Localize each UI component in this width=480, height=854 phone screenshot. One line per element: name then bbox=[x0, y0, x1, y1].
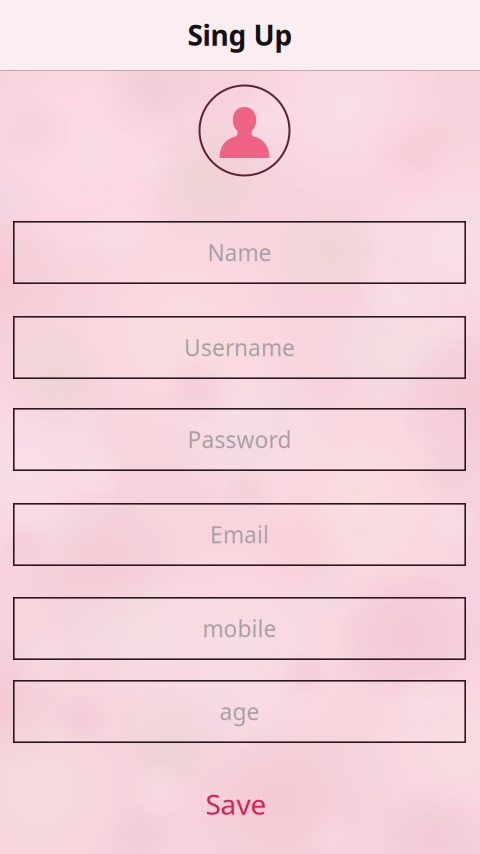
staticText: mobile bbox=[202, 613, 276, 643]
button[interactable]: Choose profile photo bbox=[199, 85, 289, 175]
staticText: Email bbox=[210, 519, 269, 549]
button[interactable]: Name bbox=[13, 221, 466, 284]
staticText: Save bbox=[205, 785, 266, 823]
staticText: Name bbox=[207, 237, 271, 267]
button[interactable]: age bbox=[13, 680, 466, 743]
staticText: Sing Up bbox=[187, 16, 292, 54]
button[interactable]: Username bbox=[13, 316, 466, 379]
staticText: Username bbox=[184, 332, 295, 362]
button[interactable]: Password bbox=[13, 408, 466, 471]
staticText: age bbox=[219, 696, 259, 726]
staticText: Password bbox=[187, 424, 291, 454]
button[interactable]: mobile bbox=[13, 597, 466, 660]
button[interactable]: Email bbox=[13, 503, 466, 566]
button[interactable]: Save bbox=[166, 781, 306, 827]
